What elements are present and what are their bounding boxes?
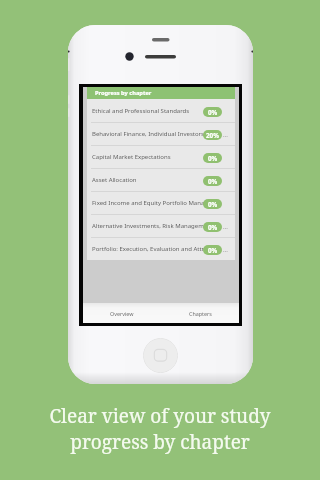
button[interactable]: Alternative Investments, Risk Management (87, 214, 235, 237)
button[interactable]: Fixed Income and Equity Portfolio Manage (87, 191, 235, 214)
staticText: 0% (208, 223, 218, 232)
staticText: Behavioral Finance, Individual Investors… (92, 130, 206, 138)
staticText: Asset Allocation (92, 176, 137, 184)
staticText: 0% (208, 177, 218, 186)
staticText: Capital Market Expectations (92, 153, 171, 161)
button[interactable]: Portfolio: Execution, Evaluation and Att… (87, 237, 235, 260)
staticText: Alternative Investments, Risk Management (92, 222, 214, 230)
button[interactable]: Behavioral Finance, Individual Investors… (87, 122, 235, 145)
staticText: 0% (208, 108, 218, 117)
staticText: Clear view of your study (49, 403, 271, 429)
button[interactable]: Home (143, 338, 178, 373)
staticText: Chapters (189, 310, 212, 317)
staticText: Progress by chapter (95, 89, 152, 97)
staticText: Ethical and Professional Standards (92, 107, 190, 115)
staticText: ... (223, 131, 228, 139)
staticText: 0% (208, 246, 218, 255)
staticText: ... (223, 246, 228, 254)
staticText: 0% (208, 154, 218, 163)
button[interactable]: Overview (83, 303, 161, 323)
staticText: progress by chapter (70, 429, 250, 455)
staticText: Portfolio: Execution, Evaluation and Att… (92, 245, 210, 253)
staticText: 20% (206, 131, 219, 140)
button[interactable]: Capital Market Expectations (87, 145, 235, 168)
staticText: 0% (208, 200, 218, 209)
staticText: Fixed Income and Equity Portfolio Manage (92, 199, 212, 207)
button[interactable]: Asset Allocation (87, 168, 235, 191)
button[interactable]: Chapters (161, 303, 239, 323)
staticText: Overview (110, 310, 134, 317)
button[interactable]: Ethical and Professional Standards (87, 99, 235, 122)
staticText: ... (223, 223, 228, 231)
